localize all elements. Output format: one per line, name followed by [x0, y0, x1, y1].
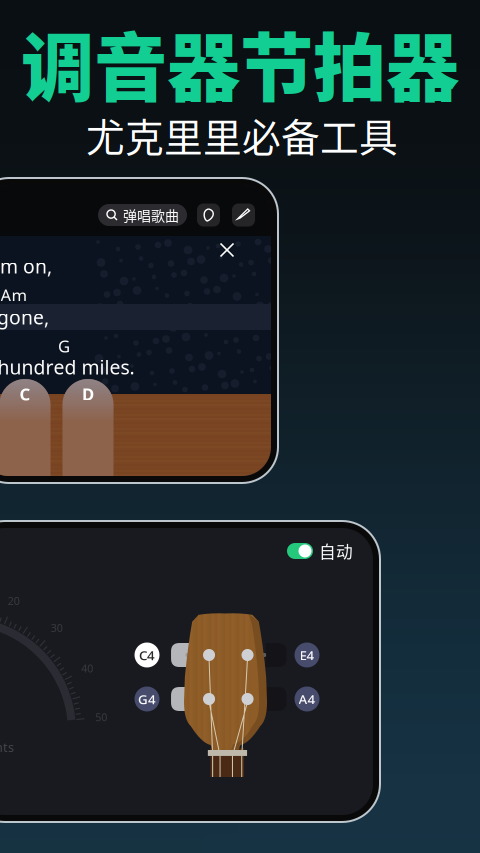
staticText: cents: [0, 738, 14, 756]
staticText: m on,: [0, 253, 52, 279]
staticText: 50: [95, 710, 107, 724]
staticText: 调音器节拍器: [21, 10, 459, 116]
button[interactable]: 自动: [287, 539, 353, 563]
button[interactable]: D: [62, 379, 113, 479]
staticText: Am: [0, 284, 27, 306]
staticText: G: [58, 335, 70, 357]
button[interactable]: C4: [134, 642, 159, 667]
button[interactable]: G4: [134, 686, 159, 711]
button[interactable]: A4: [294, 686, 319, 711]
staticText: 尤克里里必备工具: [86, 107, 398, 163]
button[interactable]: C: [0, 379, 50, 479]
button[interactable]: E4: [294, 642, 319, 667]
staticText: gone,: [0, 304, 49, 330]
button[interactable]: 弹唱歌曲: [98, 204, 187, 226]
staticText: C: [19, 383, 30, 405]
staticText: E4: [299, 646, 314, 664]
staticText: C4: [139, 646, 155, 664]
staticText: 40: [81, 661, 93, 676]
staticText: hundred miles.: [0, 354, 134, 380]
staticText: A4: [298, 690, 315, 708]
staticText: 弹唱歌曲: [123, 205, 179, 225]
button[interactable]: Edit: [232, 203, 255, 226]
staticText: 20: [8, 594, 20, 608]
staticText: G4: [138, 690, 156, 708]
staticText: 30: [51, 621, 63, 635]
button[interactable]: Close: [212, 235, 242, 265]
staticText: 自动: [319, 539, 353, 563]
staticText: D: [82, 383, 94, 405]
button[interactable]: Chord library: [197, 203, 220, 226]
